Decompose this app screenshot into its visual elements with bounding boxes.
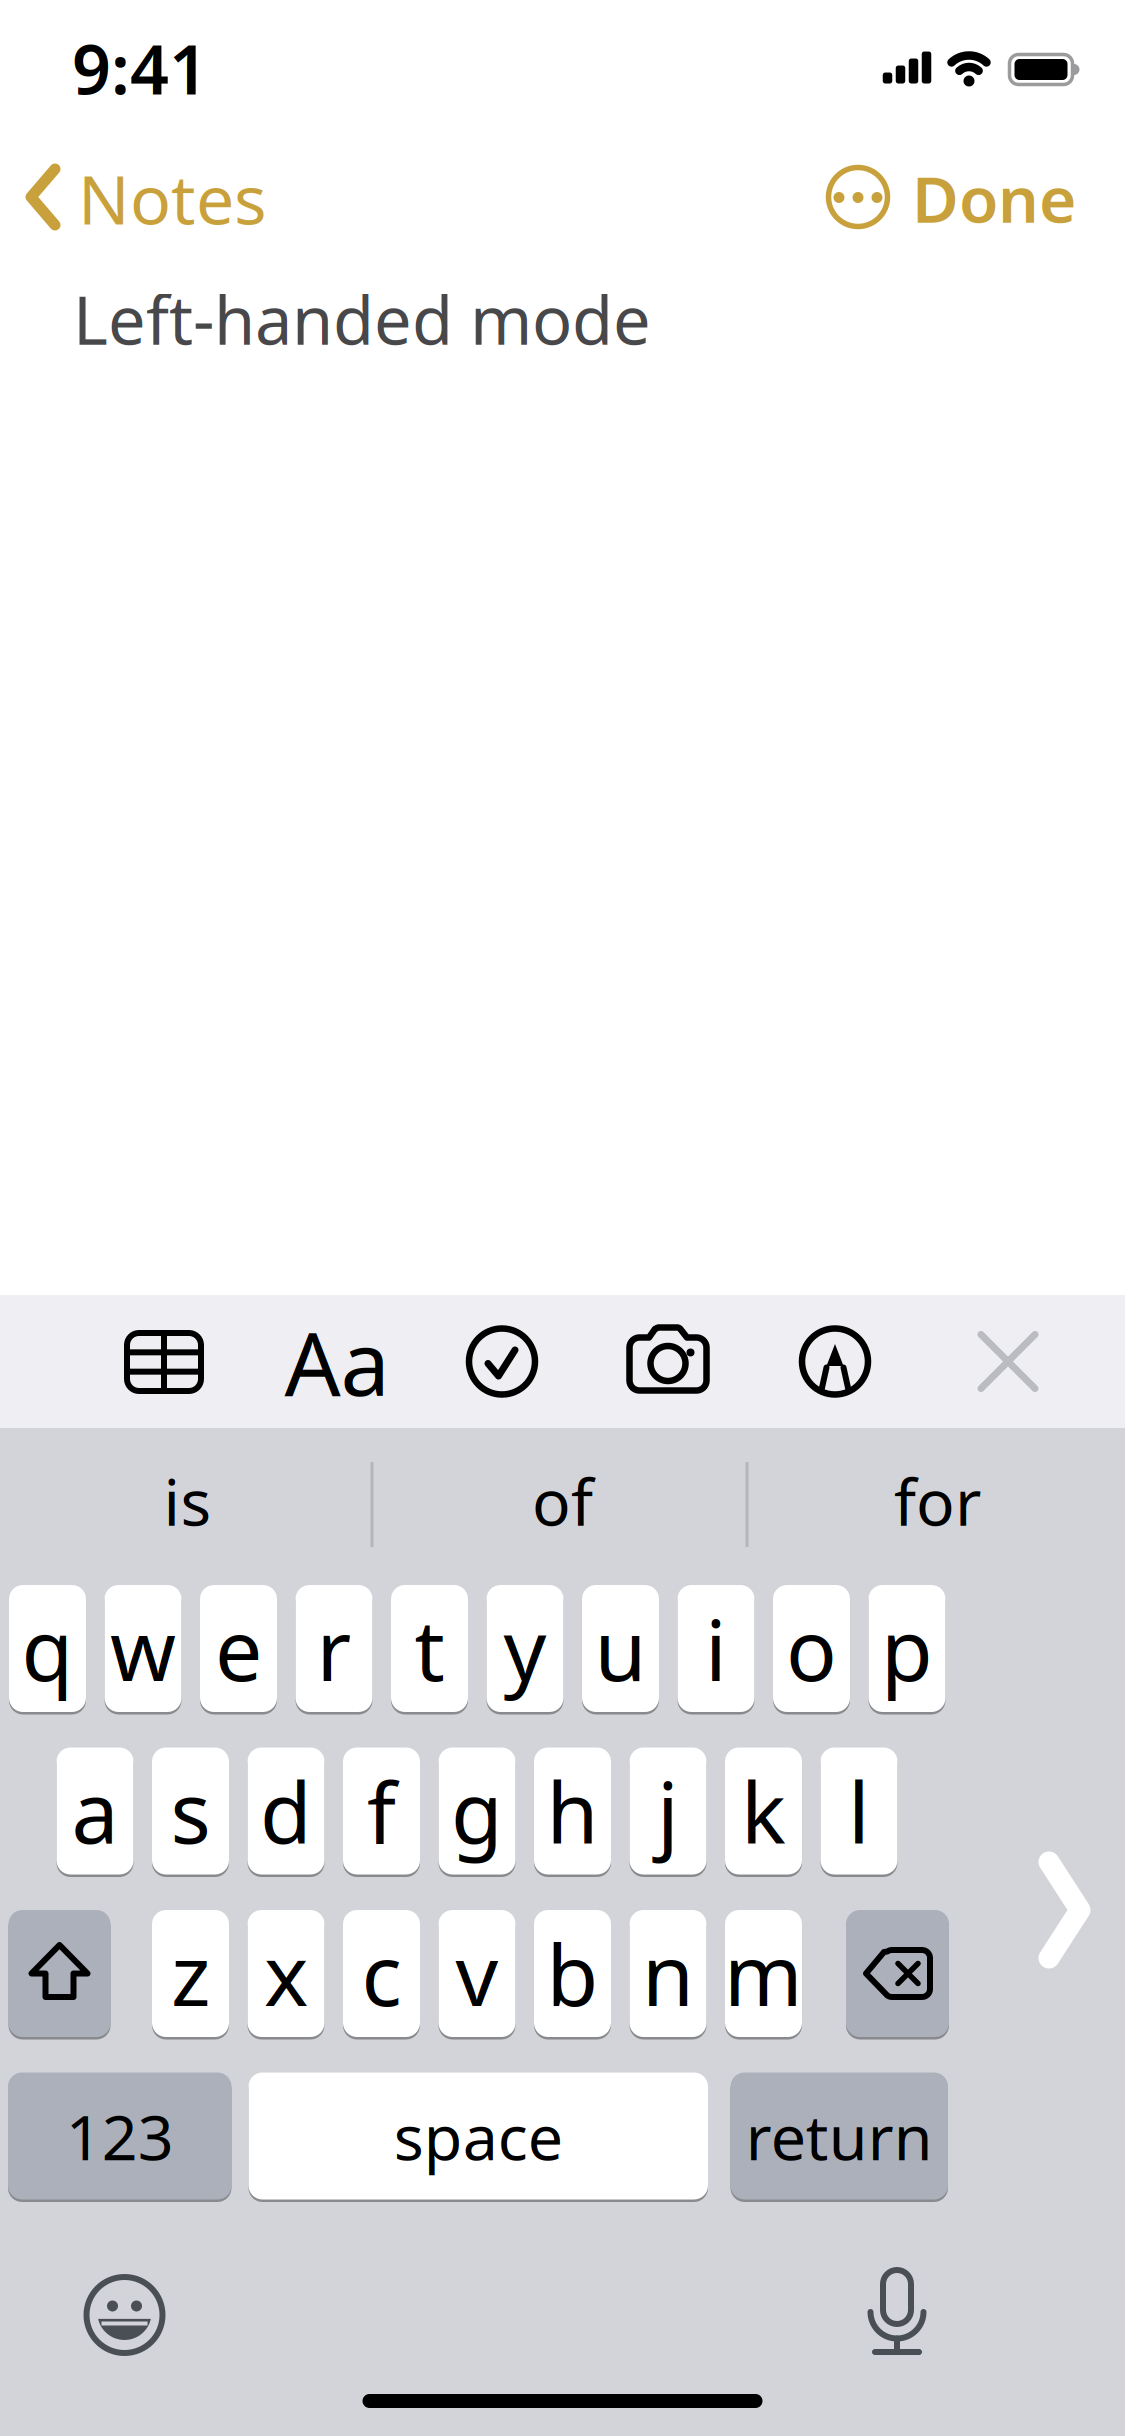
button[interactable]: v — [438, 1910, 515, 2037]
staticText: l — [848, 1755, 870, 1867]
button[interactable]: k — [725, 1747, 802, 1874]
staticText: q — [21, 1593, 73, 1704]
staticText: r — [316, 1593, 351, 1704]
button[interactable]: Notes — [27, 158, 427, 238]
button[interactable]: g — [438, 1747, 515, 1874]
button[interactable]: Emoji — [74, 2265, 174, 2365]
staticText: p — [881, 1593, 933, 1704]
button[interactable]: h — [534, 1747, 611, 1874]
staticText: k — [741, 1755, 786, 1867]
staticText: f — [367, 1755, 396, 1867]
button[interactable]: q — [9, 1585, 86, 1712]
staticText: u — [594, 1593, 646, 1704]
button[interactable]: m — [725, 1910, 802, 2037]
staticText: Notes — [78, 153, 267, 243]
staticText: w — [110, 1593, 176, 1704]
button[interactable]: z — [152, 1910, 229, 2037]
staticText: c — [361, 1918, 401, 2029]
button[interactable]: More — [818, 157, 898, 237]
button[interactable]: w — [104, 1585, 181, 1712]
staticText: space — [394, 2094, 563, 2178]
button[interactable]: Dictation — [847, 2256, 947, 2366]
staticText: Done — [912, 155, 1076, 240]
staticText: n — [642, 1918, 694, 2029]
staticText: i — [705, 1593, 727, 1704]
button[interactable]: i — [677, 1585, 754, 1712]
button[interactable]: Insert table — [109, 1295, 219, 1428]
staticText: return — [746, 2094, 933, 2178]
button[interactable]: t — [391, 1585, 468, 1712]
button[interactable]: b — [534, 1910, 611, 2037]
staticText: x — [264, 1918, 308, 2029]
button[interactable]: space — [248, 2072, 708, 2199]
staticText: e — [215, 1593, 262, 1704]
staticText: 9:41 — [72, 23, 208, 113]
staticText: a — [71, 1755, 118, 1867]
button[interactable]: o — [773, 1585, 850, 1712]
button[interactable]: is — [2, 1434, 372, 1567]
button[interactable]: r — [295, 1585, 372, 1712]
staticText: b — [546, 1918, 598, 2029]
staticText: h — [546, 1755, 598, 1867]
staticText: t — [414, 1593, 444, 1704]
button[interactable]: Insert photo — [613, 1295, 723, 1428]
staticText: for — [894, 1458, 981, 1543]
staticText: d — [260, 1755, 312, 1867]
button[interactable]: Markup — [780, 1295, 890, 1428]
button[interactable]: 123 — [8, 2072, 231, 2199]
staticText: Left-handed mode — [73, 275, 651, 363]
button[interactable]: d — [247, 1747, 324, 1874]
button[interactable]: j — [629, 1747, 706, 1874]
staticText: 123 — [66, 2094, 174, 2178]
staticText: j — [657, 1755, 679, 1867]
button[interactable]: Delete — [846, 1910, 949, 2037]
button[interactable]: of — [377, 1434, 747, 1567]
staticText: g — [451, 1755, 503, 1867]
button[interactable]: Done — [856, 158, 1076, 238]
staticText: of — [532, 1458, 593, 1543]
staticText: z — [171, 1918, 210, 2029]
staticText: s — [170, 1755, 210, 1867]
button[interactable]: x — [247, 1910, 324, 2037]
staticText: y — [503, 1593, 546, 1704]
button[interactable]: for — [752, 1434, 1122, 1567]
button[interactable]: Checklist — [447, 1295, 557, 1428]
button[interactable]: l — [820, 1747, 897, 1874]
button[interactable]: Format — [282, 1295, 392, 1428]
staticText: m — [724, 1918, 803, 2029]
staticText: is — [163, 1458, 211, 1543]
button[interactable]: Switch to full keyboard — [1037, 1850, 1093, 1970]
button[interactable]: c — [343, 1910, 420, 2037]
staticText: v — [455, 1918, 498, 2029]
button[interactable]: s — [152, 1747, 229, 1874]
button[interactable]: p — [868, 1585, 945, 1712]
button[interactable]: Dismiss toolbar — [953, 1295, 1063, 1428]
button[interactable]: n — [629, 1910, 706, 2037]
button[interactable]: return — [730, 2072, 948, 2199]
button[interactable]: f — [343, 1747, 420, 1874]
button[interactable]: u — [582, 1585, 659, 1712]
staticText: o — [786, 1593, 837, 1704]
button[interactable]: y — [486, 1585, 563, 1712]
button[interactable]: a — [56, 1747, 133, 1874]
button[interactable]: e — [200, 1585, 277, 1712]
staticText: Aa — [284, 1303, 389, 1420]
button[interactable]: Shift — [8, 1910, 110, 2037]
